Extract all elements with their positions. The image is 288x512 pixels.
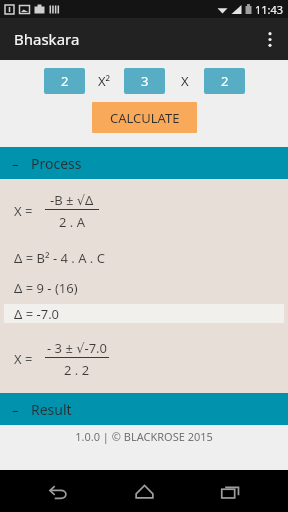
staticText: Bhaskara (14, 29, 80, 49)
button[interactable]: – (0, 393, 288, 425)
staticText: 2 . A (59, 213, 85, 231)
staticText: Δ = B² - 4 . A . C (14, 249, 105, 267)
staticText: – (12, 155, 19, 173)
button[interactable]: More options (252, 18, 288, 60)
button[interactable]: Home (116, 470, 172, 512)
button[interactable]: Back (30, 470, 86, 512)
staticText: 11:43 (255, 2, 284, 17)
staticText: 3 (141, 72, 149, 90)
button[interactable]: 2 (44, 68, 85, 94)
staticText: X² (98, 72, 111, 90)
staticText: – (12, 401, 19, 419)
button[interactable]: 3 (124, 68, 165, 94)
staticText: 2 (61, 72, 69, 90)
staticText: Result (31, 400, 72, 419)
staticText: Δ = -7.0 (14, 305, 60, 323)
staticText: 2 (221, 72, 229, 90)
button[interactable]: 2 (204, 68, 245, 94)
staticText: X = (14, 202, 33, 220)
staticText: Process (31, 154, 82, 173)
staticText: X = (14, 350, 33, 368)
staticText: -B ± √Δ (50, 191, 94, 209)
staticText: 1.0.0 | © BLACKROSE 2015 (75, 429, 213, 444)
staticText: CALCULATE (110, 109, 180, 127)
staticText: Δ = 9 - (16) (14, 279, 78, 297)
staticText: 2 . 2 (64, 361, 90, 379)
staticText: X (181, 72, 189, 90)
button[interactable]: – (0, 147, 288, 179)
staticText: - 3 ± √-7.0 (47, 339, 108, 357)
button[interactable]: Recent apps (202, 470, 258, 512)
button[interactable]: CALCULATE (92, 102, 197, 133)
